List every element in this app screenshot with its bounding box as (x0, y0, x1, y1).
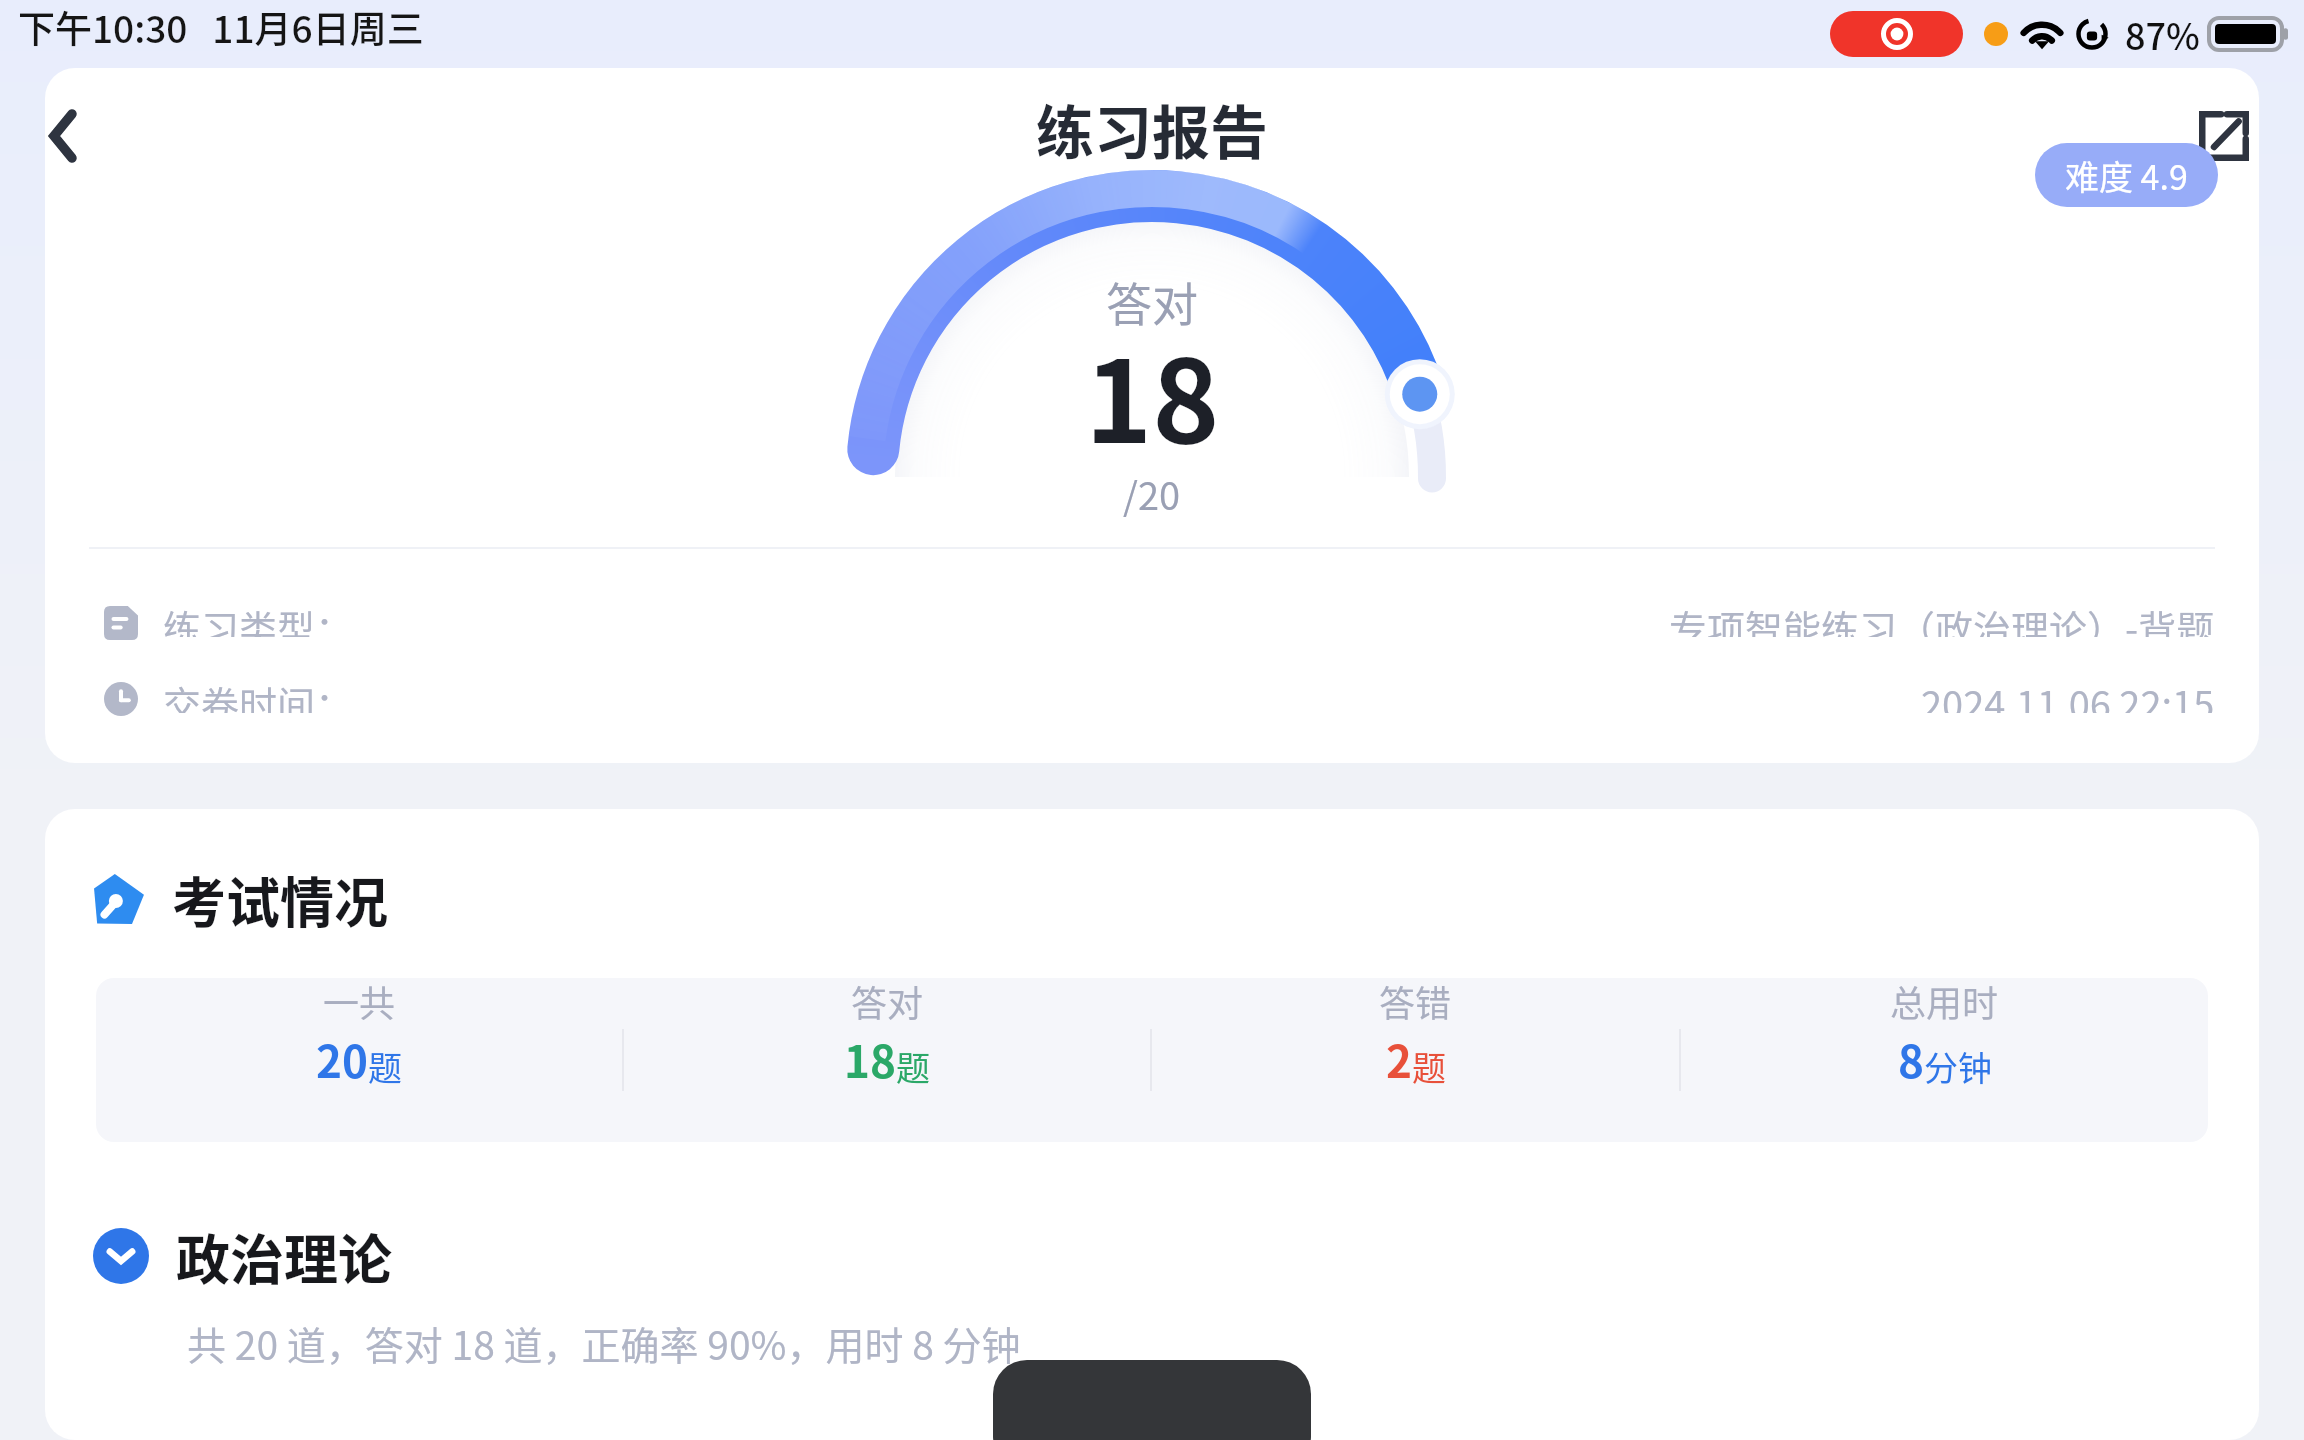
staticText: 政治理论 (176, 1217, 392, 1295)
staticText: 专项智能练习（政治理论）-背题 (1669, 599, 2215, 637)
staticText: 答对 (1106, 268, 1198, 335)
button[interactable]: Collapse section (93, 1228, 149, 1284)
staticText: 2024.11.06 22:15 (1921, 675, 2215, 713)
staticText: 题 (1412, 1042, 1446, 1091)
staticText: /20 (1123, 466, 1181, 521)
staticText: 交卷时间： (163, 675, 354, 713)
staticText: 练习报告 (1036, 87, 1269, 171)
staticText: 题 (368, 1042, 402, 1091)
staticText: 题 (896, 1042, 930, 1091)
staticText: 下午10:30 11月6日周三 (18, 0, 424, 54)
staticText: 20 (316, 1027, 368, 1091)
button[interactable]: Back (45, 68, 141, 164)
staticText: 2 (1386, 1027, 1412, 1091)
staticText: 18 (1085, 311, 1220, 476)
staticText: 答对 (851, 978, 924, 1027)
staticText: 分钟 (1924, 1042, 1992, 1091)
staticText: 总用时 (1890, 978, 1999, 1027)
staticText: 练习类型： (163, 599, 354, 637)
button[interactable]: Share (2189, 101, 2259, 171)
staticText: 考试情况 (172, 860, 388, 938)
staticText: 87% (2125, 8, 2200, 60)
button[interactable]: 难度 4.9 (2035, 143, 2218, 207)
staticText: 8 (1898, 1027, 1924, 1091)
staticText: 难度 4.9 (2065, 151, 2188, 200)
staticText: 一共 (323, 978, 396, 1027)
staticText: 共 20 道，答对 18 道，正确率 90%，用时 8 分钟 (187, 1315, 1021, 1371)
staticText: 答错 (1379, 978, 1452, 1027)
staticText: 18 (844, 1027, 896, 1091)
